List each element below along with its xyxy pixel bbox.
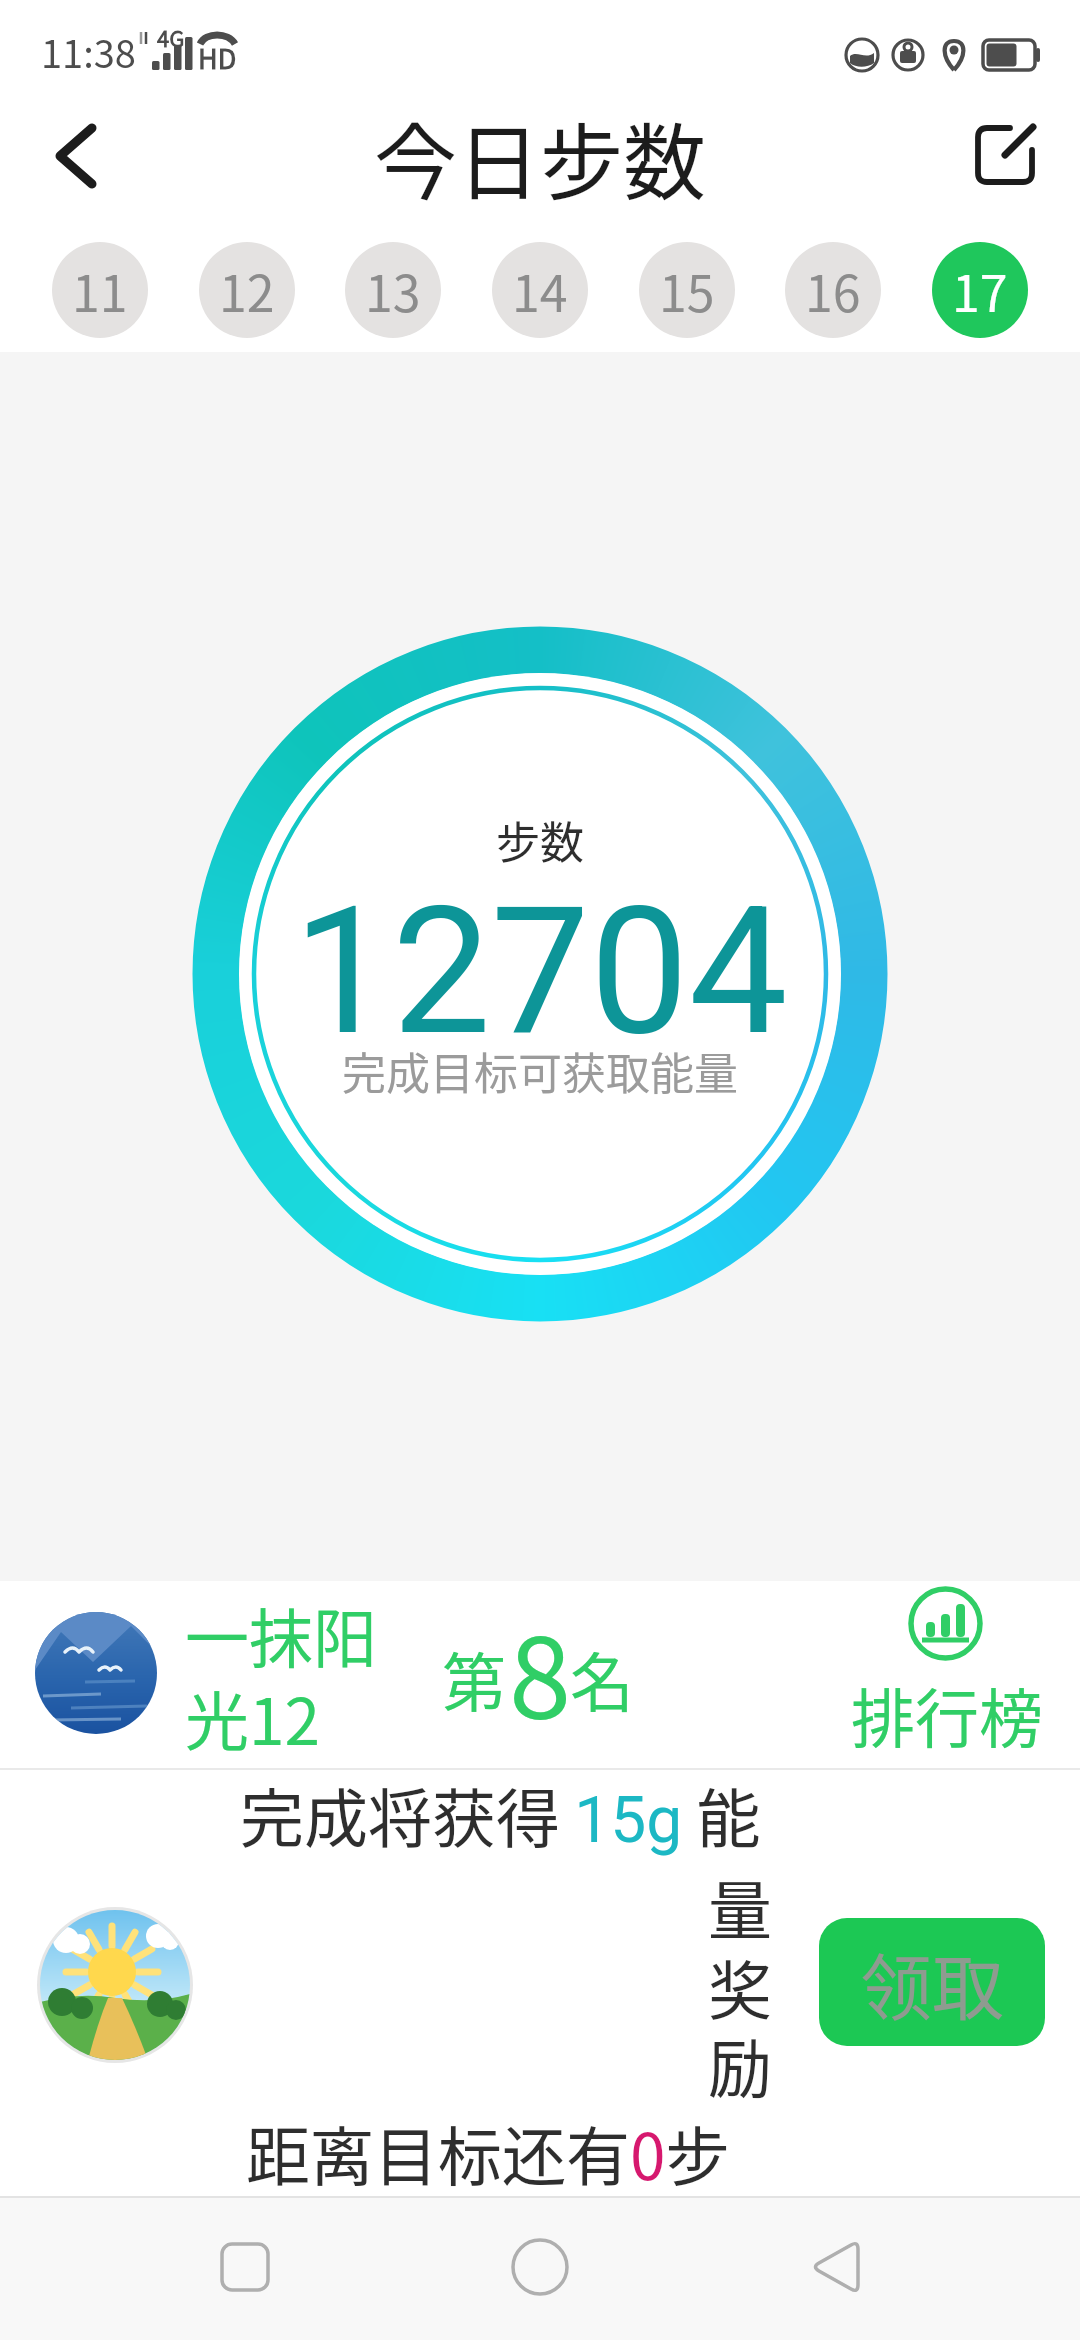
staticText: 11 [72, 254, 128, 326]
staticText: 光12 [185, 1671, 321, 1764]
button[interactable] [965, 115, 1050, 200]
button[interactable]: 15 [639, 242, 735, 338]
button[interactable]: 11 [52, 242, 148, 338]
staticText: 名 [570, 1632, 634, 1725]
staticText: 13 [365, 254, 421, 326]
button[interactable] [37, 1907, 193, 2063]
staticText: 11:38 [41, 24, 136, 79]
button[interactable] [840, 1580, 1055, 1760]
staticText: 12 [219, 254, 275, 326]
staticText: 领取 [860, 1930, 1005, 2034]
staticText: 12704 [293, 869, 788, 1069]
button[interactable] [30, 120, 120, 196]
staticText: 完成将获得 15g 能 [240, 1768, 761, 1861]
staticText: 今日步数 [374, 97, 706, 217]
button[interactable]: 领取 [819, 1918, 1045, 2046]
staticText: 排行榜 [851, 1668, 1043, 1761]
staticText: 一抹阳 [185, 1588, 377, 1681]
staticText: 8 [509, 1589, 572, 1751]
button[interactable]: 14 [492, 242, 588, 338]
staticText: 励 [708, 2018, 772, 2111]
staticText: 量 [708, 1860, 772, 1953]
staticText: 距离目标还有0步 [246, 2106, 730, 2199]
staticText: 完成目标可获取能量 [342, 1039, 738, 1103]
button[interactable] [190, 2212, 300, 2322]
staticText: 步数 [496, 808, 584, 872]
staticText: HD [198, 38, 237, 77]
button[interactable]: 13 [345, 242, 441, 338]
staticText: 15 [659, 254, 715, 326]
button[interactable] [485, 2212, 595, 2322]
button[interactable] [780, 2212, 890, 2322]
staticText: 16 [805, 254, 861, 326]
staticText: 14 [512, 254, 568, 326]
button[interactable]: 17 [932, 242, 1028, 338]
staticText: 第 [442, 1632, 506, 1725]
button[interactable]: 12 [199, 242, 295, 338]
staticText: 奖 [708, 1940, 772, 2033]
button[interactable]: 16 [785, 242, 881, 338]
button[interactable] [35, 1612, 157, 1734]
staticText: 4G [157, 21, 185, 53]
staticText: 17 [952, 254, 1008, 326]
